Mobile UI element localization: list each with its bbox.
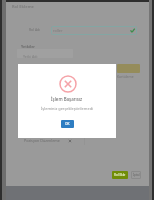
staticText: Yetki Adı (23, 54, 38, 59)
staticText: Yetkiler (21, 44, 35, 49)
staticText: OK (65, 122, 70, 126)
staticText: İşleminiz gerçekleştirilemedi (41, 106, 94, 111)
staticText: Pozisyon Düzenleme (24, 138, 60, 143)
staticText: Kartüleme (117, 74, 134, 79)
button[interactable]: Rol Ekle (112, 171, 128, 179)
staticText: İşlem Başarısız (51, 96, 83, 102)
staticText: roller (53, 28, 63, 33)
staticText: İptal (133, 173, 140, 177)
staticText: Rol Ekle (114, 173, 126, 177)
staticText: Rol Ekleme (12, 4, 34, 9)
staticText: Rol Adı (29, 27, 41, 32)
button[interactable]: OK (61, 120, 74, 128)
button[interactable]: İptal (131, 171, 141, 179)
button[interactable]: roller (51, 26, 137, 35)
